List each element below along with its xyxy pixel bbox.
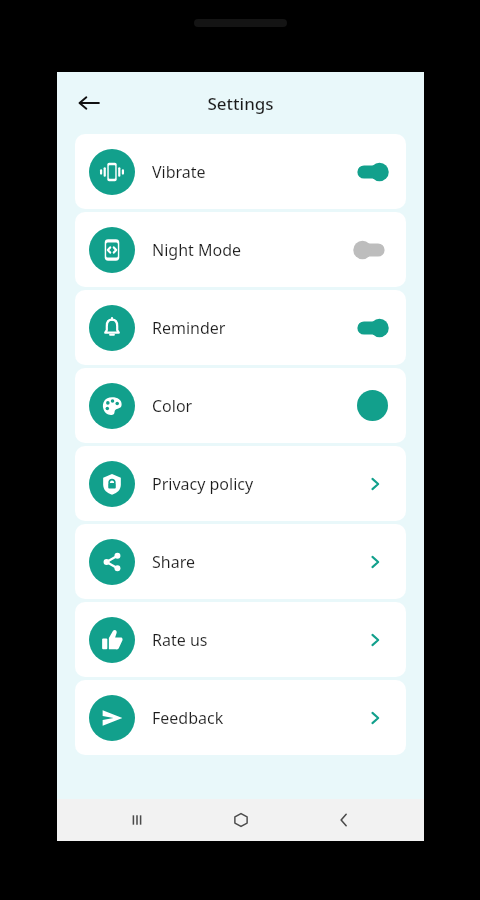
button[interactable]: Vibrate: [75, 134, 406, 209]
staticText: Reminder: [152, 317, 354, 339]
button[interactable]: Home: [218, 799, 264, 841]
button[interactable]: Back: [321, 799, 367, 841]
button[interactable]: Toggle on: [354, 317, 388, 339]
button[interactable]: Feedback: [75, 680, 406, 755]
button[interactable]: Recent apps: [114, 799, 160, 841]
button[interactable]: Color: [75, 368, 406, 443]
button[interactable]: Back: [67, 81, 111, 125]
button[interactable]: Privacy policy: [75, 446, 406, 521]
button[interactable]: Night Mode: [75, 212, 406, 287]
staticText: Share: [152, 551, 362, 573]
button[interactable]: Reminder: [75, 290, 406, 365]
button[interactable]: Pick color: [357, 390, 388, 421]
staticText: Rate us: [152, 629, 362, 651]
staticText: Color: [152, 395, 357, 417]
button[interactable]: Share: [75, 524, 406, 599]
staticText: Vibrate: [152, 161, 354, 183]
staticText: Settings: [207, 92, 274, 115]
staticText: Night Mode: [152, 239, 354, 261]
staticText: Feedback: [152, 707, 362, 729]
button[interactable]: Rate us: [75, 602, 406, 677]
button[interactable]: Toggle on: [354, 161, 388, 183]
button[interactable]: Toggle off: [354, 239, 388, 261]
staticText: Privacy policy: [152, 473, 362, 495]
